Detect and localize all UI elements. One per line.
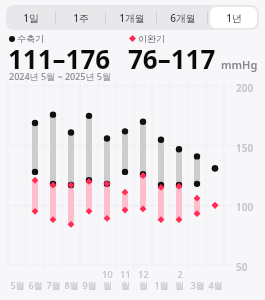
staticText: 100 <box>236 200 254 214</box>
staticText: 12 <box>138 268 149 280</box>
staticText: 수축기 <box>17 33 44 44</box>
staticText: 1월 <box>154 279 169 291</box>
button[interactable]: 1일 <box>8 7 54 28</box>
staticText: 이완기 <box>138 33 165 44</box>
staticText: 7월 <box>46 279 61 291</box>
staticText: 월 <box>121 280 130 291</box>
staticText: mmHg <box>221 57 258 72</box>
staticText: 8월 <box>64 279 79 291</box>
staticText: 50 <box>236 260 248 274</box>
staticText: 6개월 <box>170 11 196 25</box>
staticText: 1일 <box>23 11 39 25</box>
staticText: 9월 <box>82 279 97 291</box>
staticText: 2024년 5월 ~ 2025년 5월 <box>9 70 111 82</box>
button[interactable]: 1개월 <box>108 7 155 28</box>
button[interactable]: 1주 <box>58 7 104 28</box>
staticText: 111–176 <box>8 41 111 76</box>
button[interactable]: 6개월 <box>159 7 206 28</box>
staticText: 76–117 <box>128 41 216 76</box>
staticText: 4월 <box>208 279 223 291</box>
staticText: 200 <box>236 81 254 95</box>
staticText: 2 <box>177 268 183 280</box>
staticText: 6월 <box>28 279 43 291</box>
staticText: 3월 <box>190 279 205 291</box>
button[interactable]: 1년 <box>210 7 257 28</box>
staticText: 1개월 <box>119 11 145 25</box>
staticText: 1년 <box>226 11 242 25</box>
staticText: 150 <box>236 141 254 155</box>
staticText: 11 <box>120 268 131 280</box>
staticText: 5월 <box>10 279 25 291</box>
staticText: 월 <box>103 280 112 291</box>
staticText: 10 <box>102 268 113 280</box>
staticText: 월 <box>175 280 184 291</box>
staticText: 1주 <box>73 11 89 25</box>
staticText: 월 <box>139 280 148 291</box>
